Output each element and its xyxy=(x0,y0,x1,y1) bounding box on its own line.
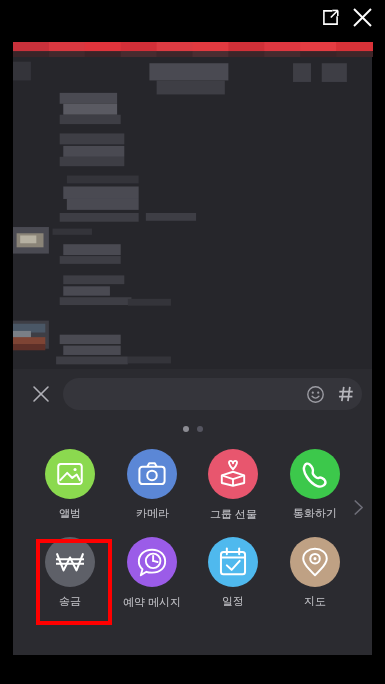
staticText: 송금 xyxy=(59,594,81,608)
button[interactable]: Hashtag xyxy=(330,378,362,410)
staticText: 카메라 xyxy=(136,506,169,520)
staticText: 그룹 선물 xyxy=(210,506,257,521)
button[interactable]: 앨범 xyxy=(33,449,107,520)
button[interactable]: 일정 xyxy=(196,537,270,608)
button[interactable]: Close keyboard xyxy=(23,376,59,412)
staticText: 예약 메시지 xyxy=(123,594,181,609)
button[interactable]: Emoji xyxy=(63,378,362,410)
staticText: 앨범 xyxy=(59,506,81,520)
button[interactable]: Close xyxy=(347,2,377,32)
button[interactable]: 카메라 xyxy=(115,449,189,520)
button[interactable]: Open in new window xyxy=(315,2,345,32)
button[interactable]: 그룹 선물 xyxy=(196,449,270,521)
button[interactable]: 통화하기 xyxy=(278,449,352,520)
button[interactable]: 예약 메시지 xyxy=(115,537,189,609)
staticText: 통화하기 xyxy=(293,506,337,520)
button[interactable]: Next page xyxy=(344,493,372,521)
staticText: 일정 xyxy=(222,594,244,608)
staticText: 지도 xyxy=(304,594,326,608)
button[interactable]: 송금 xyxy=(33,537,107,608)
button[interactable]: 지도 xyxy=(278,537,352,608)
button[interactable]: Emoji xyxy=(300,379,330,409)
